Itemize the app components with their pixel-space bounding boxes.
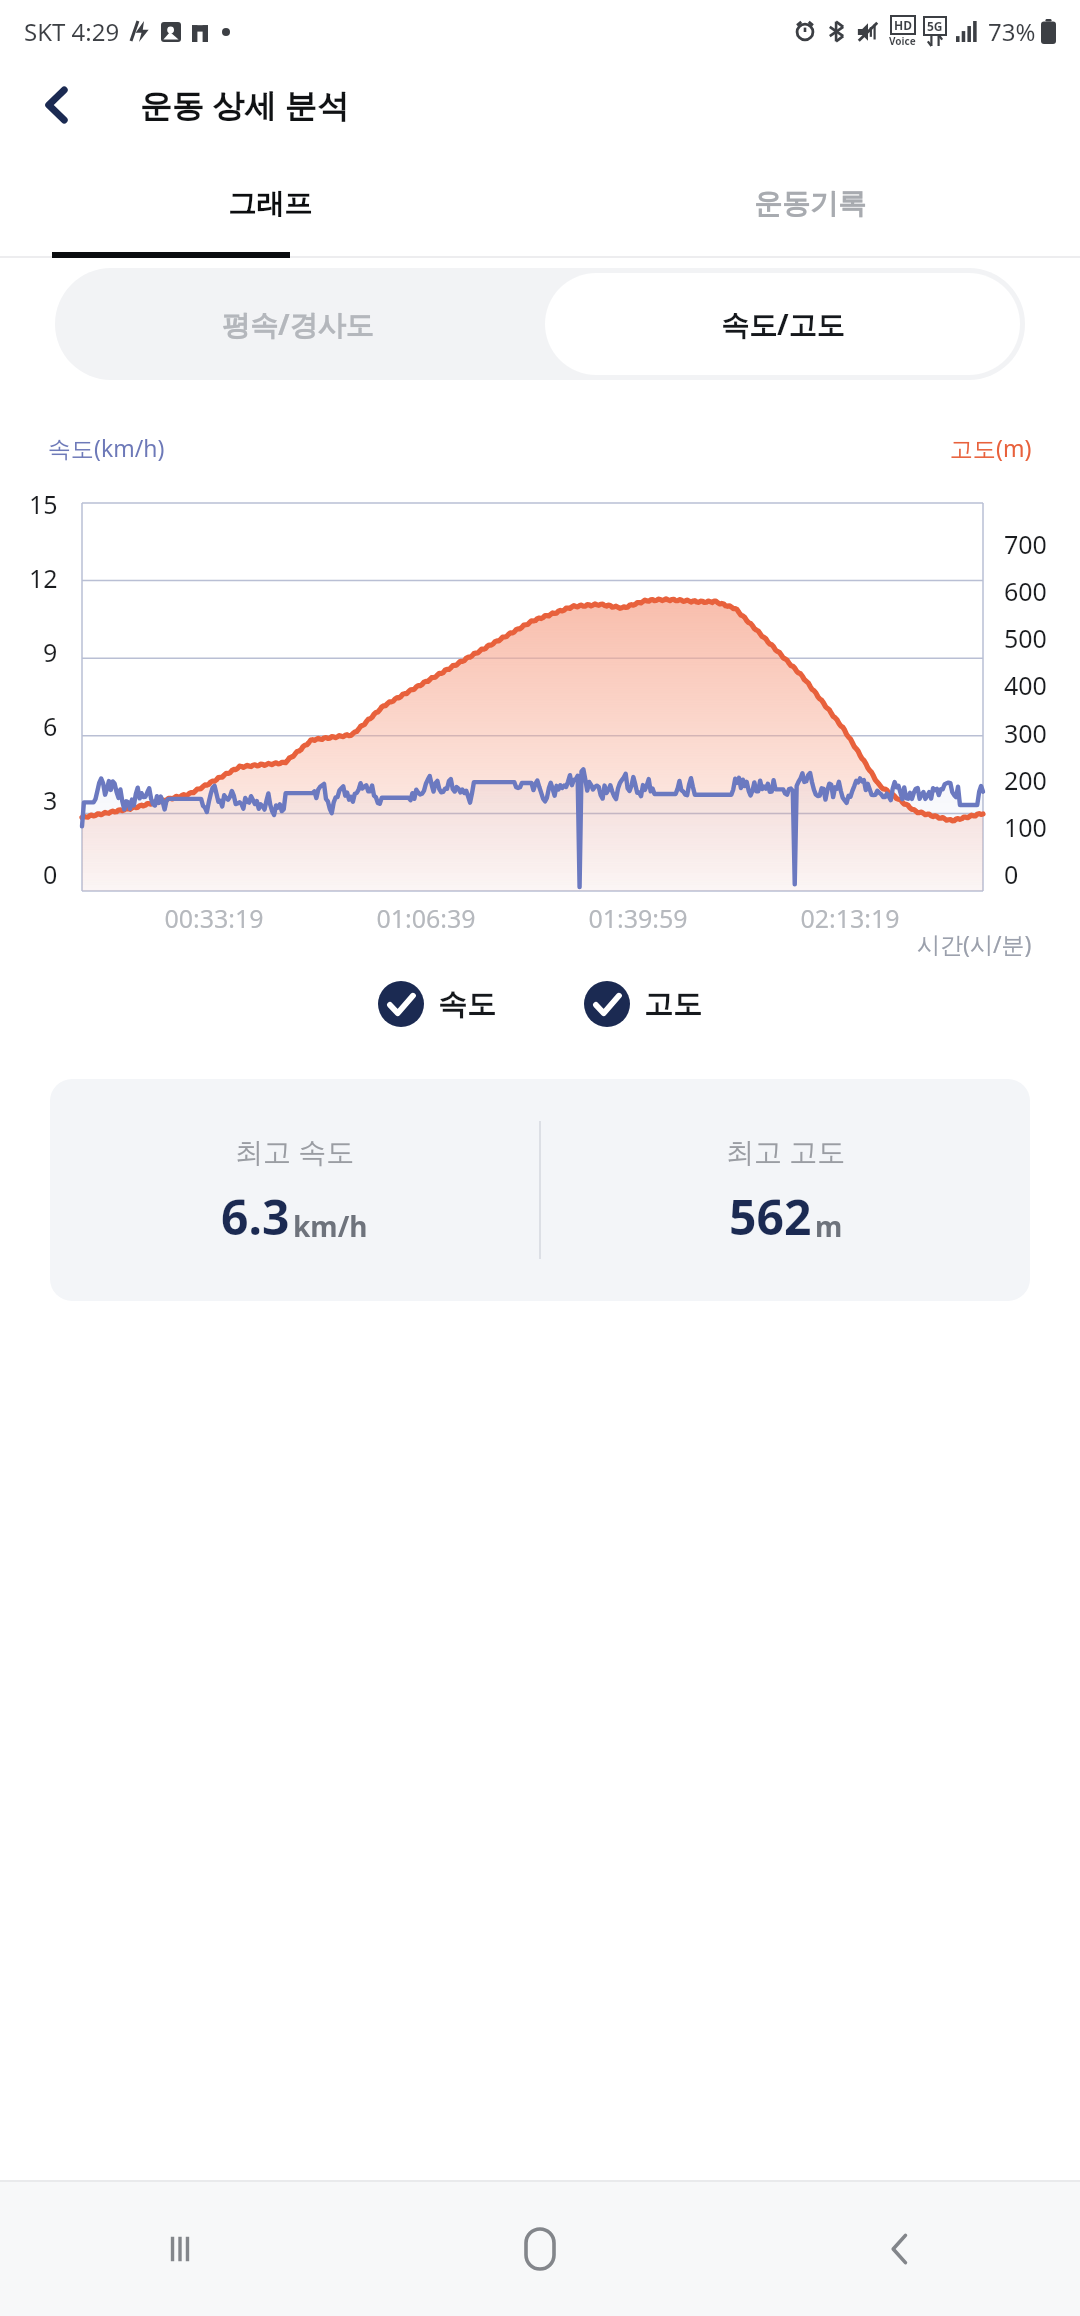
- staticText: 500: [1004, 621, 1047, 655]
- button[interactable]: 그래프: [0, 148, 540, 258]
- staticText: 5G: [927, 18, 943, 34]
- staticText: 12: [29, 561, 58, 595]
- button[interactable]: Back: [26, 74, 88, 136]
- staticText: 운동기록: [754, 186, 866, 221]
- staticText: 700: [1004, 527, 1047, 561]
- staticText: km/h: [293, 1207, 368, 1245]
- staticText: 최고 속도: [235, 1132, 355, 1170]
- staticText: 01:06:39: [320, 901, 532, 935]
- staticText: 400: [1004, 668, 1047, 702]
- staticText: 시간(시/분): [917, 928, 1032, 959]
- staticText: 15: [29, 487, 58, 521]
- button[interactable]: 속도/고도: [545, 273, 1020, 375]
- staticText: 고도(m): [950, 432, 1032, 463]
- staticText: 6.3: [221, 1184, 290, 1249]
- button[interactable]: 평속/경사도: [55, 268, 540, 380]
- staticText: 100: [1004, 810, 1047, 844]
- staticText: 고도: [644, 986, 702, 1023]
- staticText: Voice: [889, 34, 916, 48]
- button[interactable]: 속도: [372, 975, 502, 1033]
- staticText: 3: [43, 783, 58, 817]
- staticText: 최고 고도: [726, 1132, 846, 1170]
- staticText: SKT 4:29: [24, 15, 120, 48]
- staticText: 200: [1004, 763, 1047, 797]
- staticText: 0: [1004, 857, 1019, 891]
- button[interactable]: 최고 속도: [50, 1079, 1030, 1301]
- staticText: 속도/고도: [721, 305, 845, 343]
- staticText: 9: [43, 635, 58, 669]
- staticText: 562: [729, 1184, 812, 1249]
- staticText: 600: [1004, 574, 1047, 608]
- staticText: m: [815, 1207, 843, 1245]
- button[interactable]: Home: [360, 2182, 720, 2316]
- staticText: 6: [43, 709, 58, 743]
- staticText: 그래프: [228, 186, 312, 221]
- staticText: 00:33:19: [108, 901, 320, 935]
- button[interactable]: Recents: [0, 2182, 360, 2316]
- staticText: 평속/경사도: [222, 305, 374, 343]
- staticText: 속도(km/h): [48, 432, 165, 463]
- button[interactable]: Back: [720, 2182, 1080, 2316]
- staticText: 0: [43, 857, 58, 891]
- staticText: 01:39:59: [532, 901, 744, 935]
- staticText: 속도: [438, 986, 496, 1023]
- button[interactable]: 고도: [578, 975, 708, 1033]
- staticText: HD: [894, 17, 912, 33]
- staticText: 300: [1004, 716, 1047, 750]
- staticText: 02:13:19: [744, 901, 956, 935]
- staticText: 73%: [988, 15, 1036, 48]
- staticText: 운동 상세 분석: [140, 83, 349, 127]
- button[interactable]: 운동기록: [540, 148, 1080, 258]
